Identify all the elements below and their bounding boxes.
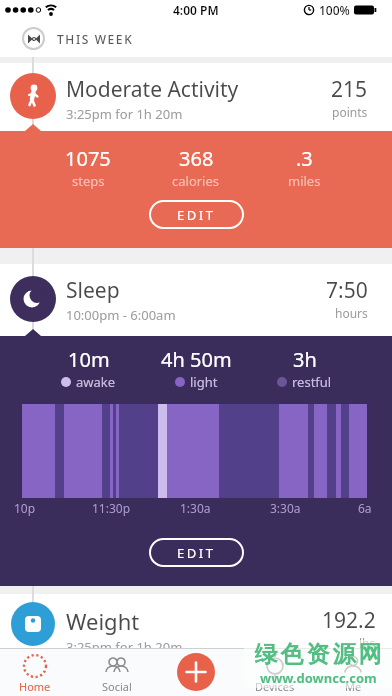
staticText: 10m <box>68 346 110 373</box>
staticText: light <box>190 373 218 391</box>
staticText: www.downcc.com <box>260 669 377 687</box>
staticText: Devices <box>255 679 295 694</box>
staticText: Sleep <box>66 276 120 305</box>
staticText: Social <box>102 679 132 694</box>
staticText: 215 <box>331 75 368 104</box>
staticText: 1075 <box>65 145 111 172</box>
button[interactable]: Me <box>326 653 380 694</box>
staticText: 10p <box>14 500 36 516</box>
staticText: 1:30a <box>180 500 211 516</box>
staticText: Weight <box>66 606 140 636</box>
staticText: hours <box>335 305 368 321</box>
staticText: 3h <box>293 346 317 373</box>
staticText: miles <box>288 172 321 190</box>
staticText: .3 <box>296 145 313 172</box>
staticText: steps <box>72 172 105 190</box>
staticText: 10:00pm - 6:00am <box>66 306 176 324</box>
staticText: 4h 50m <box>161 346 232 373</box>
staticText: EDIT <box>177 206 216 224</box>
staticText: 100% <box>319 2 350 18</box>
button[interactable]: EDIT <box>149 538 244 567</box>
staticText: 绿色资源网 <box>253 640 383 669</box>
staticText: 6a <box>358 500 372 516</box>
button[interactable] <box>177 653 215 691</box>
staticText: calories <box>172 172 220 190</box>
button[interactable]: Devices <box>248 653 302 694</box>
staticText: THIS WEEK <box>57 31 134 47</box>
staticText: 368 <box>179 145 214 172</box>
staticText: 4:00 PM <box>173 2 219 18</box>
staticText: 192.2 <box>322 606 376 635</box>
staticText: restful <box>292 373 332 391</box>
staticText: Moderate Activity <box>66 75 239 104</box>
staticText: lbs <box>359 635 376 648</box>
button[interactable]: EDIT <box>149 200 244 229</box>
staticText: 7:50 <box>326 276 368 305</box>
staticText: awake <box>76 373 116 391</box>
staticText: points <box>332 104 368 120</box>
staticText: Home <box>19 679 51 694</box>
button[interactable]: THIS WEEK <box>0 20 392 57</box>
staticText: Me <box>345 679 362 694</box>
staticText: 3:25pm for 1h 20m <box>66 638 183 656</box>
staticText: EDIT <box>177 544 216 562</box>
staticText: 3:30a <box>270 500 301 516</box>
button[interactable]: Home <box>8 653 62 694</box>
staticText: 3:25pm for 1h 20m <box>66 105 183 123</box>
button[interactable]: Social <box>90 653 144 694</box>
staticText: 11:30p <box>92 500 131 516</box>
